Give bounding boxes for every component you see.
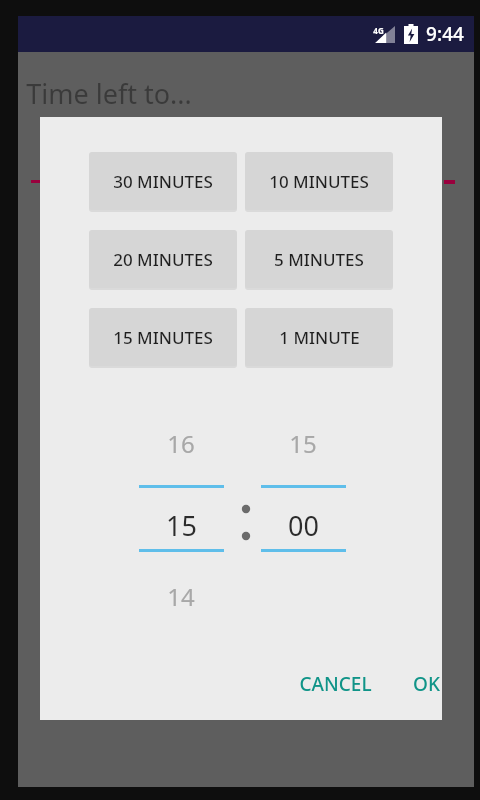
staticText: 1 MINUTE [279, 326, 360, 349]
button[interactable]: 20 MINUTES [89, 230, 237, 288]
button[interactable]: 15 MINUTES [89, 308, 237, 366]
staticText: 15 [166, 507, 197, 544]
button[interactable]: 16 [126, 417, 236, 637]
staticText: 9:44 [426, 21, 464, 47]
staticText: 20 MINUTES [113, 248, 213, 271]
button[interactable]: 15 [248, 417, 358, 637]
staticText: 30 MINUTES [113, 170, 213, 193]
staticText: 16 [167, 427, 195, 460]
staticText: 4G [373, 25, 384, 36]
staticText: CANCEL [299, 671, 372, 697]
staticText: 15 MINUTES [113, 326, 213, 349]
other: 4G signal [373, 25, 395, 43]
staticText: 10 MINUTES [269, 170, 369, 193]
staticText: OK [413, 671, 440, 697]
staticText: 15 [289, 427, 317, 460]
staticText: 00 [288, 507, 319, 544]
button[interactable]: 30 MINUTES [89, 152, 237, 210]
staticText: 14 [167, 580, 195, 613]
button[interactable]: 5 MINUTES [245, 230, 393, 288]
button[interactable]: CANCEL [289, 662, 381, 706]
button[interactable]: 1 MINUTE [245, 308, 393, 366]
button[interactable]: 10 MINUTES [245, 152, 393, 210]
staticText: 5 MINUTES [274, 248, 364, 271]
staticText: Time left to... [26, 75, 192, 112]
other: Battery charging [404, 24, 418, 44]
button[interactable]: OK [396, 662, 456, 706]
